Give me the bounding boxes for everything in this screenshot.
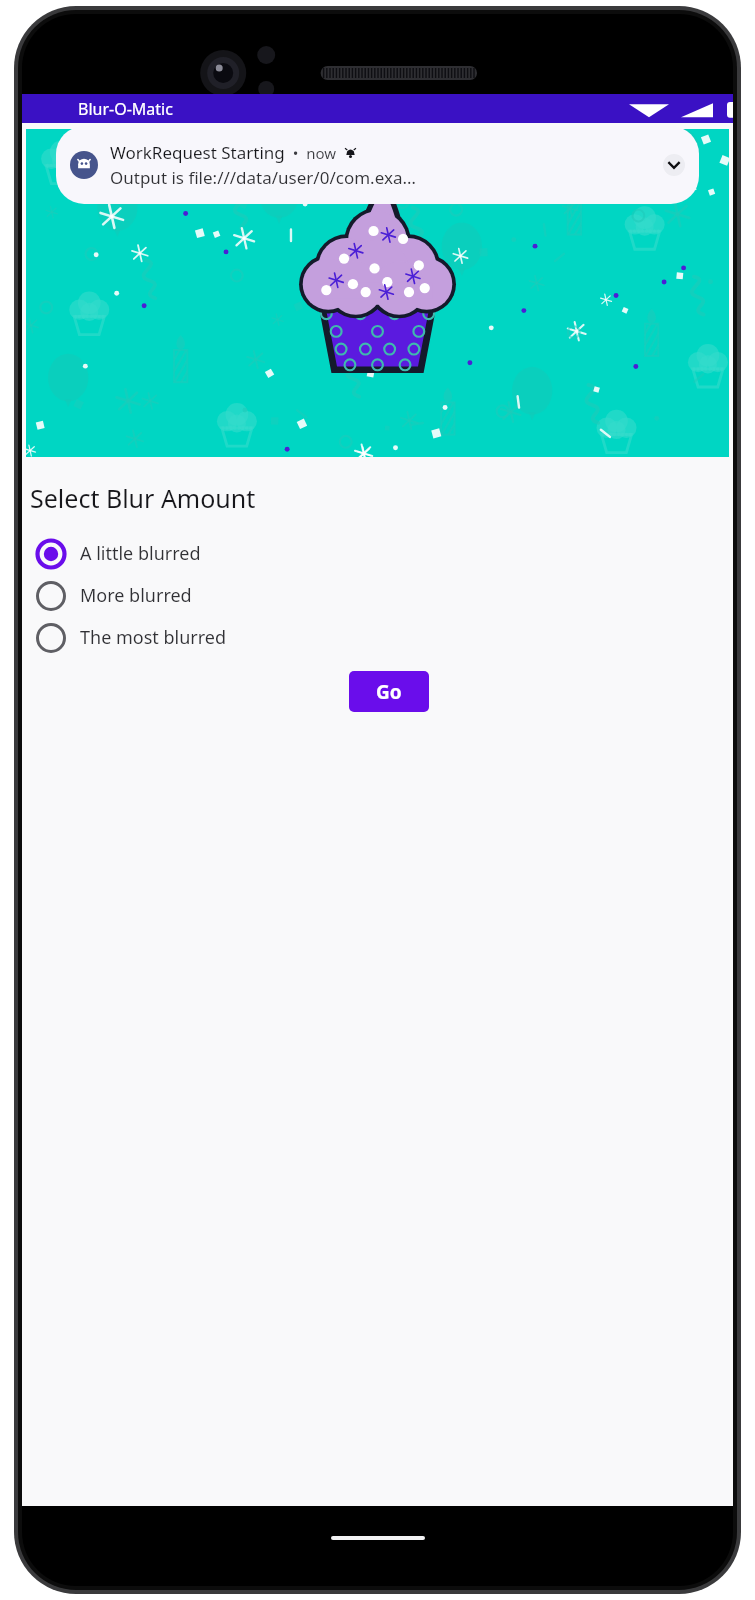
staticText: More blurred [80,583,192,608]
staticText: Go [376,679,402,705]
button[interactable]: WorkRequest Starting [56,126,699,204]
staticText: WorkRequest Starting [110,141,285,164]
staticText: Blur-O-Matic [78,98,173,120]
staticText: A little blurred [80,541,201,566]
staticText: • now [285,143,344,163]
staticText: Select Blur Amount [30,481,256,515]
button[interactable]: Expand notification [663,154,685,176]
button[interactable]: Go [349,671,429,712]
staticText: The most blurred [80,625,227,650]
staticText: Output is file:///data/user/0/com.exa… [110,166,416,189]
button[interactable]: The most blurred [22,617,733,658]
button[interactable]: A little blurred [22,533,733,574]
button[interactable]: More blurred [22,575,733,616]
